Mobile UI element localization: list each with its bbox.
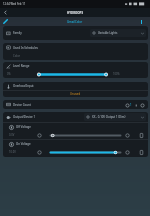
button[interactable]: On Voltage: [9, 140, 148, 148]
button[interactable]: Count: [133, 102, 139, 108]
button[interactable]: Level Range: [6, 62, 148, 70]
button[interactable]: Rename: [0, 17, 10, 26]
staticText: HYDROOPS: [67, 11, 83, 15]
staticText: 12:34 Wed Feb 11: [3, 2, 26, 6]
button[interactable]: Remove: [124, 102, 130, 108]
button[interactable]: Off Voltage: [9, 123, 148, 131]
button[interactable]: Unused: [3, 91, 148, 97]
staticText: XX - 0-10V Output 1 (Dim): [92, 115, 126, 119]
button[interactable]: Keypad: [139, 133, 144, 138]
button[interactable]: Decrease: [37, 133, 42, 138]
button[interactable]: Increase: [125, 150, 130, 155]
button[interactable]: Output/Device 1: [6, 112, 146, 122]
staticText: Device Count: [13, 103, 31, 107]
staticText: On Voltage: [16, 142, 31, 146]
staticText: 0%: [7, 72, 11, 76]
staticText: Level Range: [13, 64, 30, 68]
button[interactable]: Increase: [125, 133, 130, 138]
staticText: 10.0V: [9, 150, 16, 154]
button[interactable]: Overload Input: [6, 82, 148, 90]
button[interactable]: Back: [0, 8, 10, 17]
staticText: Overload Input: [13, 84, 34, 88]
staticText: 0.0V: [9, 133, 15, 137]
staticText: GmailColor: [67, 20, 83, 24]
button[interactable]: Decrease: [37, 150, 42, 155]
button[interactable]: Keypad: [139, 150, 144, 155]
button[interactable]: Used In Schedules: [6, 43, 148, 52]
staticText: Family: [13, 31, 22, 35]
button[interactable]: XX - 0-10V Output 1 (Dim): [86, 113, 144, 121]
staticText: Used In Schedules: [13, 46, 38, 50]
staticText: Unused: [70, 92, 81, 96]
staticText: Output/Device 1: [13, 115, 36, 119]
staticText: 100%: [113, 72, 120, 76]
staticText: Variable Lights: [98, 31, 118, 35]
staticText: 1: [130, 103, 132, 107]
staticText: Color: [13, 54, 21, 58]
staticText: Off Voltage: [16, 125, 31, 129]
button[interactable]: Add: [139, 102, 145, 108]
button[interactable]: Variable Lights: [92, 29, 144, 37]
